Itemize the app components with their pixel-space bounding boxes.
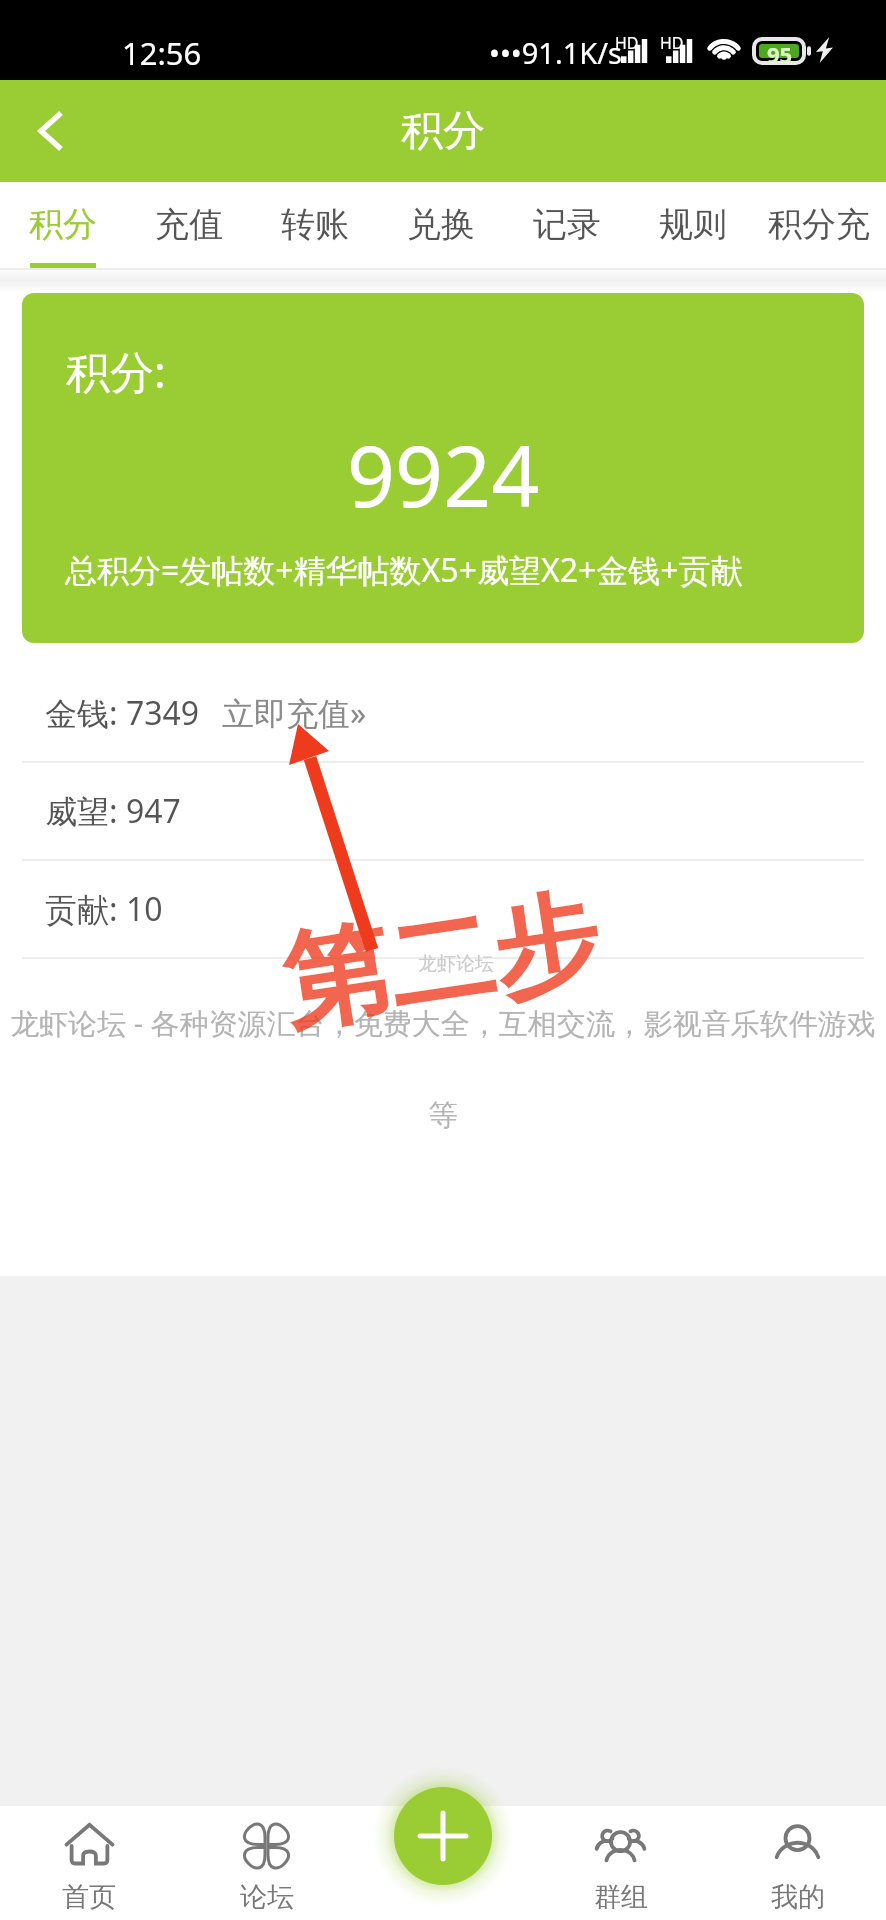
staticText: 总积分=发帖数+精华帖数X5+威望X2+金钱+贡献 (65, 548, 743, 592)
button[interactable]: 积分充 (756, 182, 882, 270)
staticText: HD (660, 32, 684, 54)
button[interactable]: 转账 (252, 182, 378, 270)
staticText: 群组 (594, 1880, 648, 1914)
button[interactable]: 论坛 (178, 1806, 355, 1920)
button[interactable]: 积分 (0, 182, 126, 270)
button[interactable]: 规则 (630, 182, 756, 270)
staticText: 95 (767, 39, 793, 63)
staticText: 积分 (401, 105, 485, 158)
staticText: 龙虾论坛 - 各种资源汇台，免费大全，互相交流，影视音乐软件游戏等 (9, 1003, 877, 1134)
button[interactable]: 兑换 (378, 182, 504, 270)
staticText: 规则 (659, 203, 727, 246)
staticText: 充值 (155, 203, 223, 246)
staticText: 12:56 (122, 32, 202, 74)
button[interactable]: 我的 (709, 1806, 886, 1920)
button[interactable]: 贡献: 10 (0, 861, 886, 957)
staticText: 首页 (62, 1880, 116, 1914)
staticText: 金钱: 7349 (45, 691, 200, 735)
staticText: 龙虾论坛 (418, 952, 494, 976)
button[interactable]: Add post (394, 1787, 492, 1885)
staticText: 转账 (281, 203, 349, 246)
staticText: 记录 (533, 203, 601, 246)
staticText: 第二步 (274, 873, 608, 1053)
staticText: 我的 (771, 1880, 825, 1914)
button[interactable]: Back (0, 80, 102, 182)
button[interactable]: 记录 (504, 182, 630, 270)
staticText: 积分充 (768, 203, 870, 246)
staticText: 威望: 947 (45, 789, 181, 833)
staticText: 贡献: 10 (45, 887, 163, 931)
staticText: 兑换 (407, 203, 475, 246)
staticText: 积分: (66, 341, 166, 401)
staticText: 积分 (29, 203, 97, 246)
staticText: 论坛 (240, 1880, 294, 1914)
staticText: HD (615, 32, 639, 54)
staticText: •••91.1K/s (489, 33, 622, 72)
button[interactable]: 群组 (532, 1806, 709, 1920)
staticText: 9924 (347, 417, 540, 531)
button[interactable]: 首页 (0, 1806, 178, 1920)
button[interactable]: 金钱: 7349 (0, 665, 886, 761)
button[interactable]: 充值 (126, 182, 252, 270)
button[interactable]: 威望: 947 (0, 763, 886, 859)
staticText: 立即充值» (222, 691, 367, 735)
